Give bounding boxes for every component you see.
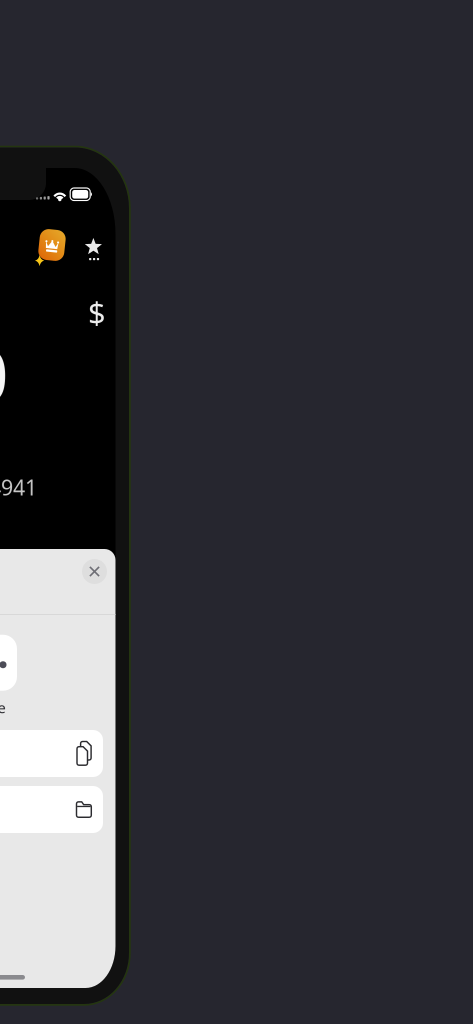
staticText: $ [88,292,106,333]
button[interactable]: Save to Files [0,786,103,833]
button[interactable]: Close [82,559,107,584]
button[interactable]: Note [0,635,17,691]
button[interactable]: Copy [0,730,103,777]
staticText: Note [0,698,5,717]
staticText: 0 [0,326,8,422]
staticText: 0x39…8364941 [0,473,37,501]
